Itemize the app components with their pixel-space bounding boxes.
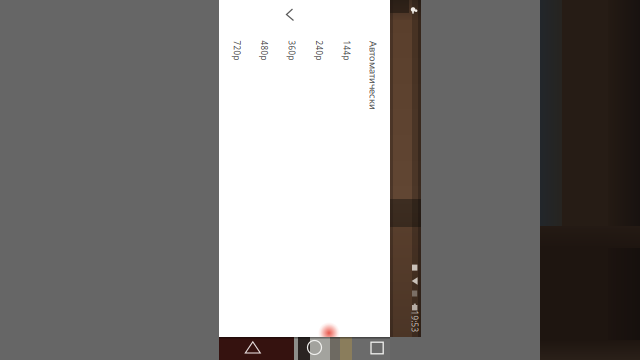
- button[interactable]: Home: [0, 0, 640, 360]
- button[interactable]: 720p: [0, 0, 640, 360]
- button[interactable]: 480p: [0, 0, 640, 360]
- staticText: 480p: [254, 45, 274, 56]
- button[interactable]: 144p: [0, 0, 640, 360]
- staticText: 240p: [309, 45, 329, 56]
- button[interactable]: Автоматически: [0, 0, 640, 360]
- staticText: 720p: [227, 45, 247, 56]
- button[interactable]: 240p: [0, 0, 640, 360]
- staticText: 360p: [282, 45, 302, 56]
- button[interactable]: Back: [0, 0, 640, 360]
- staticText: 19:53: [404, 316, 426, 327]
- button[interactable]: 360p: [0, 0, 640, 360]
- button[interactable]: Recent apps: [0, 0, 640, 360]
- staticText: 144p: [336, 45, 356, 56]
- button[interactable]: Close quality menu: [0, 0, 640, 360]
- staticText: Автоматически: [338, 69, 407, 82]
